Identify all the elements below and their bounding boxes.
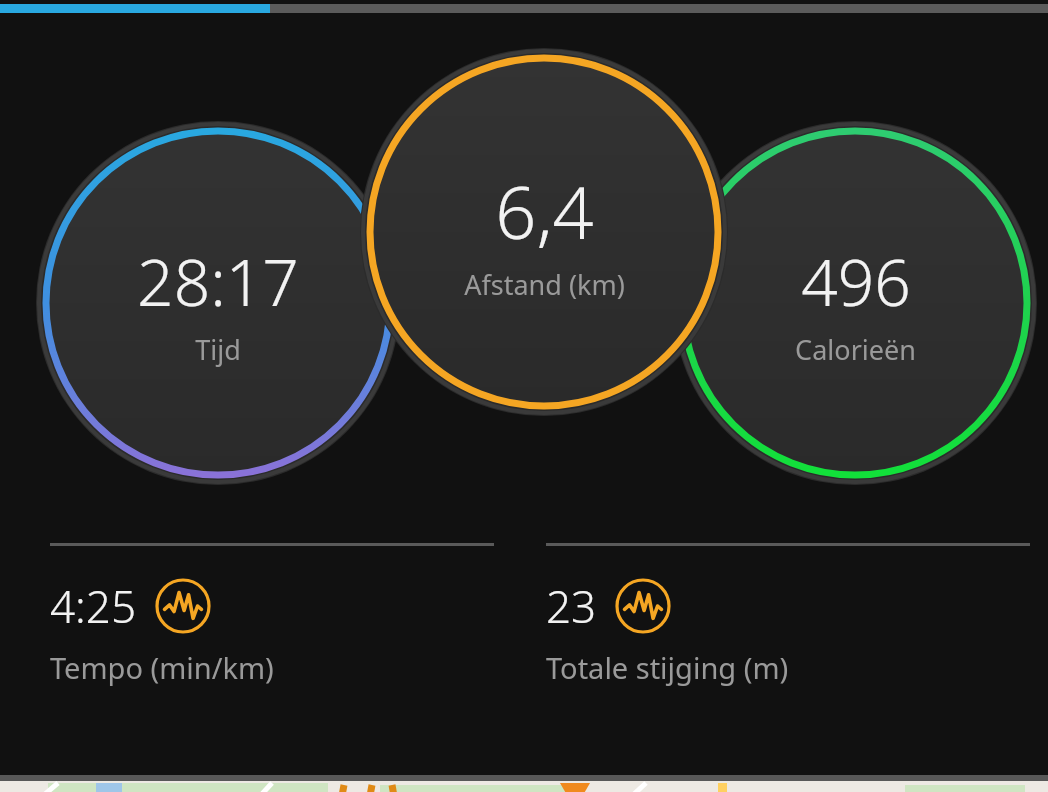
button[interactable]: 28:17 xyxy=(48,133,388,473)
other: Activity graph xyxy=(155,578,211,634)
staticText: Totale stijging (m) xyxy=(546,648,789,687)
button[interactable]: 6,4 xyxy=(374,62,714,402)
staticText: 4:25 xyxy=(50,576,137,636)
staticText: Tijd xyxy=(195,331,241,368)
button[interactable]: 496 xyxy=(685,133,1025,473)
staticText: Afstand (km) xyxy=(464,266,625,303)
staticText: 28:17 xyxy=(137,238,299,325)
staticText: 6,4 xyxy=(495,162,594,260)
staticText: 496 xyxy=(801,238,911,325)
button[interactable]: 4:25 xyxy=(50,543,494,687)
button[interactable]: 23 xyxy=(546,543,1030,687)
staticText: Tempo (min/km) xyxy=(50,648,274,687)
staticText: 23 xyxy=(546,576,597,636)
staticText: Calorieën xyxy=(795,331,916,368)
other: Activity graph xyxy=(615,578,671,634)
